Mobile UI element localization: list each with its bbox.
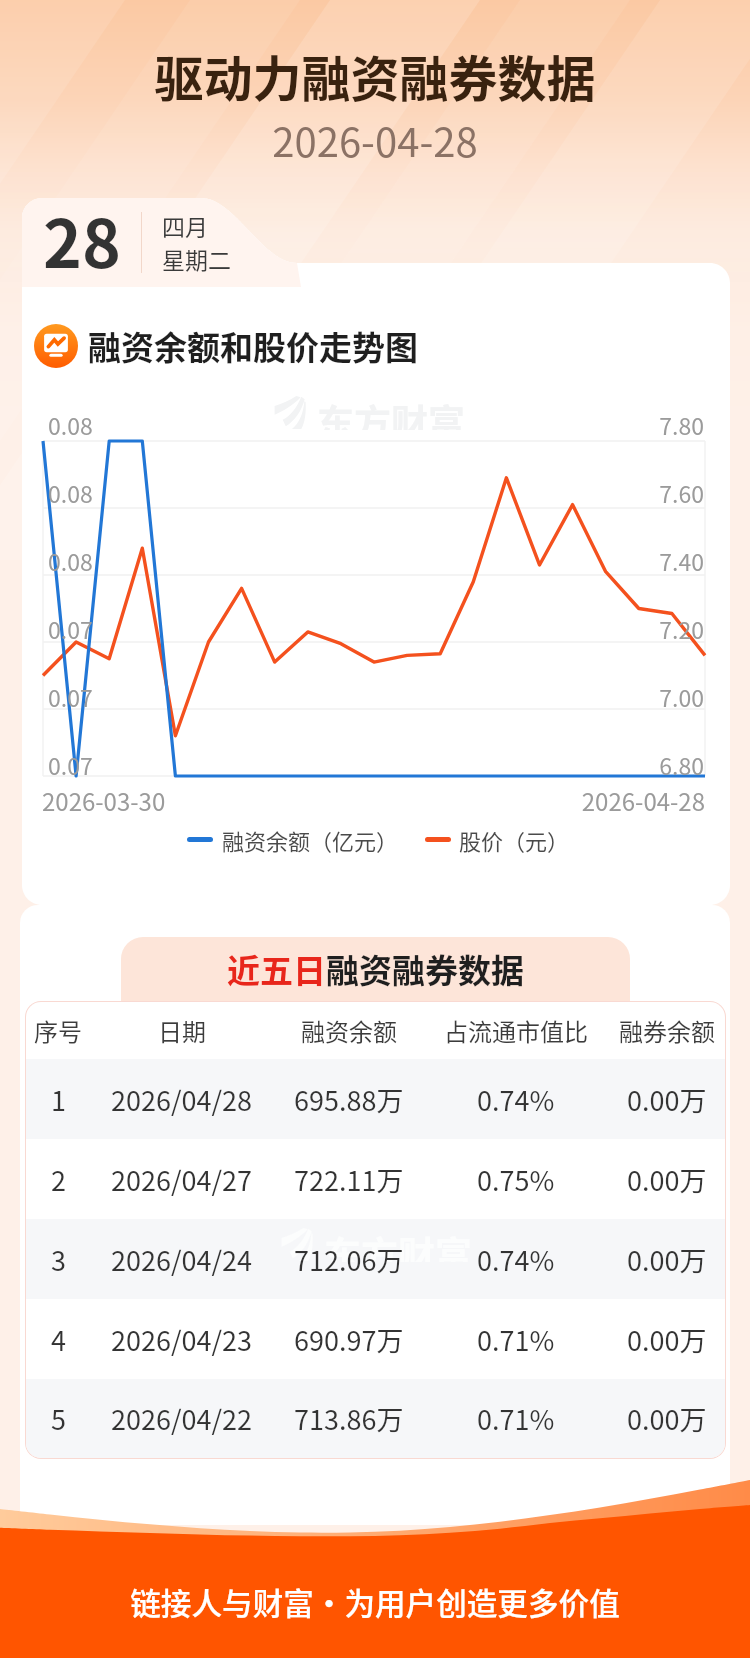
staticText: 链接人与财富·为用户创造更多价值: [0, 1580, 750, 1624]
staticText: 722.11万: [294, 1160, 404, 1199]
staticText: 2026/04/28: [111, 1080, 253, 1119]
staticText: 1: [51, 1080, 66, 1119]
staticText: 0.74%: [477, 1240, 555, 1279]
staticText: 0.00万: [627, 1320, 707, 1359]
staticText: 0.71%: [477, 1320, 555, 1359]
staticText: 5: [51, 1399, 66, 1438]
staticText: 6.80: [22, 748, 704, 781]
staticText: 7.80: [22, 408, 704, 441]
button[interactable]: 3: [26, 1219, 725, 1299]
staticText: 融资余额（亿元）: [222, 824, 399, 854]
staticText: 四月: [162, 209, 208, 242]
staticText: 0.08: [48, 544, 93, 577]
staticText: 融资余额和股价走势图: [88, 322, 418, 370]
staticText: 0.75%: [477, 1160, 555, 1199]
staticText: 星期二: [162, 242, 231, 275]
staticText: 690.97万: [294, 1320, 404, 1359]
staticText: 0.74%: [477, 1080, 555, 1119]
staticText: 2026-03-30: [42, 783, 166, 818]
staticText: 7.40: [22, 544, 704, 577]
staticText: 0.00万: [627, 1399, 707, 1438]
staticText: 2026/04/23: [111, 1320, 253, 1359]
staticText: 695.88万: [294, 1080, 404, 1119]
staticText: 2026-04-28: [0, 111, 750, 169]
button[interactable]: 2: [26, 1139, 725, 1219]
button[interactable]: 4: [26, 1299, 725, 1379]
staticText: 融券余额: [619, 1013, 715, 1048]
staticText: 7.00: [22, 680, 704, 713]
staticText: 序号: [34, 1013, 82, 1048]
staticText: 0.71%: [477, 1399, 555, 1438]
staticText: 0.00万: [627, 1080, 707, 1119]
staticText: 7.60: [22, 476, 704, 509]
staticText: 股价（元）: [459, 824, 570, 854]
button[interactable]: 1: [26, 1059, 725, 1139]
staticText: 0.08: [48, 408, 93, 441]
staticText: 东方财富: [324, 1226, 472, 1262]
staticText: 2026/04/24: [111, 1240, 253, 1279]
staticText: 2026/04/27: [111, 1160, 253, 1199]
staticText: 0.07: [48, 748, 93, 781]
staticText: 2026/04/22: [111, 1399, 253, 1438]
staticText: 2026-04-28: [22, 783, 705, 818]
staticText: 0.08: [48, 476, 93, 509]
button[interactable]: 5: [26, 1379, 725, 1458]
staticText: 712.06万: [294, 1240, 404, 1279]
staticText: 0.00万: [627, 1160, 707, 1199]
staticText: 融资余额: [301, 1013, 397, 1048]
staticText: 日期: [158, 1013, 206, 1048]
staticText: 0.07: [48, 680, 93, 713]
staticText: 融资融券数据: [326, 945, 524, 993]
staticText: 驱动力融资融券数据: [0, 40, 750, 111]
staticText: 3: [51, 1240, 66, 1279]
staticText: 7.20: [22, 612, 704, 645]
staticText: 0.00万: [627, 1240, 707, 1279]
staticText: 2: [51, 1160, 66, 1199]
staticText: 713.86万: [294, 1399, 404, 1438]
staticText: 占流通市值比: [444, 1013, 588, 1048]
staticText: 近五日: [227, 945, 326, 993]
staticText: 4: [51, 1320, 66, 1359]
staticText: 28: [43, 191, 121, 287]
staticText: 0.07: [48, 612, 93, 645]
staticText: 东方财富: [317, 394, 465, 430]
